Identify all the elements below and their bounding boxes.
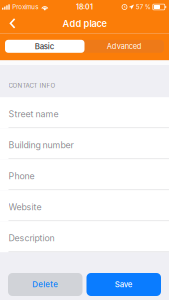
- staticText: Street name: [8, 109, 58, 119]
- button[interactable]: Save: [86, 273, 161, 296]
- staticText: Add place: [62, 18, 106, 29]
- staticText: Save: [115, 280, 133, 289]
- button[interactable]: Back: [0, 15, 27, 32]
- button[interactable]: Street name: [0, 97, 169, 128]
- staticText: Delete: [32, 280, 58, 289]
- button[interactable]: Phone: [0, 159, 169, 190]
- button[interactable]: Delete: [8, 273, 82, 296]
- staticText: Phone: [8, 171, 34, 181]
- staticText: 57 %: [136, 3, 151, 11]
- staticText: CONTACT INFO: [8, 82, 55, 89]
- staticText: Building number: [8, 140, 73, 150]
- staticText: Advanced: [107, 42, 142, 51]
- button[interactable]: Building number: [0, 128, 169, 159]
- button[interactable]: Website: [0, 190, 169, 221]
- button[interactable]: Basic: [5, 40, 84, 53]
- button[interactable]: Description: [0, 221, 169, 252]
- staticText: Basic: [35, 41, 55, 51]
- staticText: Proximus: [12, 3, 38, 11]
- staticText: Website: [8, 202, 41, 212]
- staticText: Description: [8, 233, 54, 243]
- button[interactable]: Advanced: [84, 40, 164, 53]
- staticText: 18:01: [76, 3, 93, 11]
